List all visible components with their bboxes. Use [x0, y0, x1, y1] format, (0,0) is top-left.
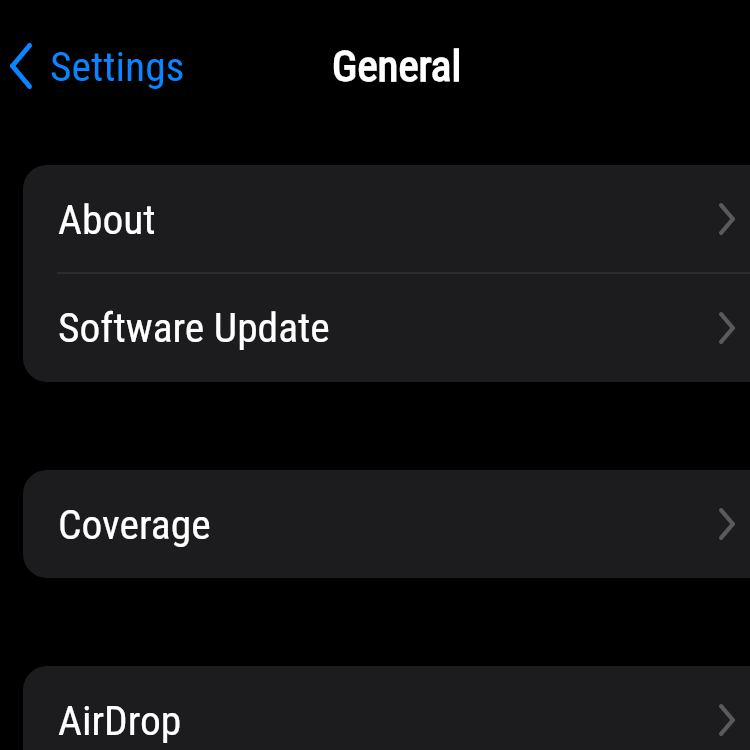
staticText: General: [332, 41, 462, 91]
button[interactable]: About: [23, 165, 750, 273]
button[interactable]: Back: [0, 41, 185, 90]
staticText: AirDrop: [58, 696, 182, 745]
other: AirDrop: [719, 704, 735, 736]
staticText: Coverage: [58, 500, 211, 549]
button[interactable]: Coverage: [23, 470, 750, 578]
other: Back: [10, 43, 32, 89]
staticText: Software Update: [58, 303, 330, 352]
staticText: Settings: [50, 42, 185, 91]
button[interactable]: Software Update: [23, 273, 750, 382]
other: Coverage: [719, 508, 735, 540]
other: About: [719, 203, 735, 235]
button[interactable]: AirDrop: [23, 666, 750, 750]
staticText: About: [58, 195, 156, 244]
other: Software Update: [719, 312, 735, 344]
